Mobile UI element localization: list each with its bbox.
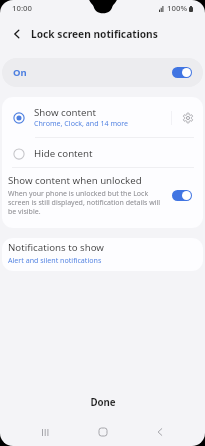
staticText: Lock screen notifications	[31, 27, 158, 41]
staticText: Alert and silent notifications	[8, 255, 102, 265]
button[interactable]: Back	[131, 418, 188, 446]
staticText: Notifications to show	[8, 241, 104, 254]
button[interactable]: Show content	[2, 97, 203, 137]
staticText: Chrome, Clock, and 14 more	[34, 118, 129, 128]
button[interactable]: Back	[7, 24, 27, 44]
button[interactable]: Done	[70, 390, 136, 415]
staticText: 100%	[167, 3, 188, 14]
button[interactable]: Home	[74, 418, 131, 446]
staticText: When your phone is unlocked but the Lock…	[8, 189, 166, 216]
staticText: Hide content	[34, 147, 93, 160]
staticText: Show content	[34, 106, 97, 119]
button[interactable]: On	[2, 58, 203, 87]
button[interactable]: Settings	[172, 98, 203, 137]
staticText: On	[13, 66, 27, 79]
staticText: Show content when unlocked	[8, 174, 142, 187]
staticText: Done	[90, 396, 116, 409]
button[interactable]: Hide content	[2, 138, 203, 167]
button[interactable]: Notifications to show	[2, 238, 203, 271]
button[interactable]: Show content when unlocked	[2, 168, 203, 228]
staticText: 10:00	[12, 3, 32, 14]
button[interactable]: Recent apps	[17, 418, 74, 446]
